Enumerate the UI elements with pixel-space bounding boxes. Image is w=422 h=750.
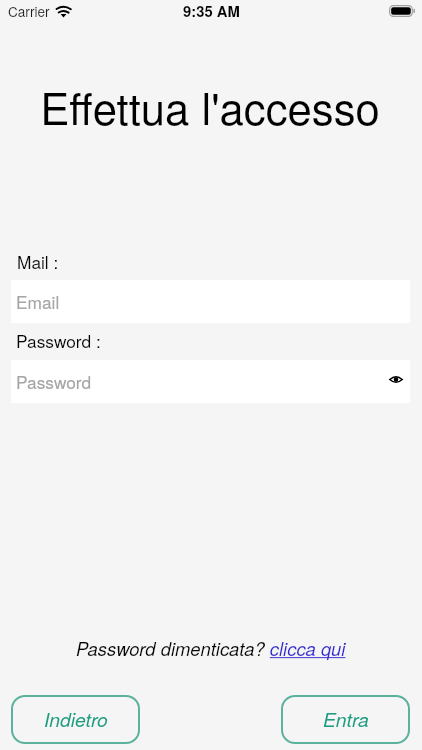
staticText: Carrier (8, 1, 50, 20)
staticText: Mail : (17, 249, 59, 274)
button[interactable]: Password (11, 360, 410, 403)
staticText: Password (16, 369, 92, 394)
staticText: Password dimenticata? clicca qui (76, 635, 346, 661)
button[interactable]: Password dimenticata? clicca qui (76, 635, 346, 661)
button[interactable]: Show password (384, 367, 408, 391)
button[interactable]: Email (11, 280, 410, 323)
button[interactable]: Indietro (11, 695, 140, 744)
staticText: Indietro (44, 705, 108, 732)
staticText: Email (16, 289, 60, 314)
staticText: Password : (16, 328, 101, 353)
staticText: Effettua l'accesso (0, 75, 421, 138)
staticText: 9:35 AM (183, 0, 240, 21)
button[interactable]: Entra (281, 695, 410, 744)
staticText: Entra (323, 705, 369, 732)
